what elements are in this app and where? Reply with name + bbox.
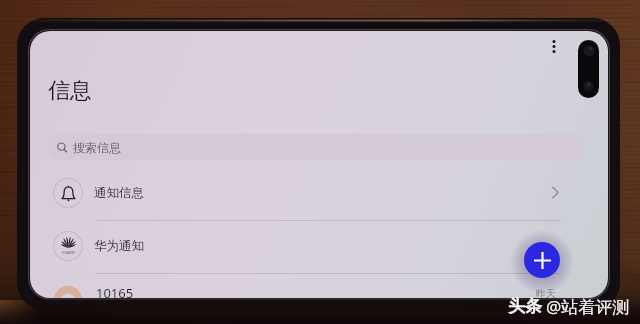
staticText: @站着评测 xyxy=(546,295,630,318)
button[interactable] xyxy=(30,220,608,273)
staticText: 信息 xyxy=(48,77,92,105)
staticText: 搜索信息 xyxy=(73,140,121,155)
staticText: 头条 xyxy=(508,296,542,317)
button[interactable]: More options xyxy=(543,35,565,57)
staticText: 通知信息 xyxy=(94,185,144,201)
button[interactable]: New message xyxy=(524,242,560,278)
staticText: 华为通知 xyxy=(94,238,144,254)
button[interactable]: 搜索信息 xyxy=(47,134,585,160)
staticText: HUAWEI xyxy=(62,250,75,254)
staticText: 昨天 xyxy=(536,287,556,298)
staticText: 10165 xyxy=(96,284,134,298)
button[interactable] xyxy=(30,167,608,220)
button[interactable] xyxy=(30,274,608,298)
